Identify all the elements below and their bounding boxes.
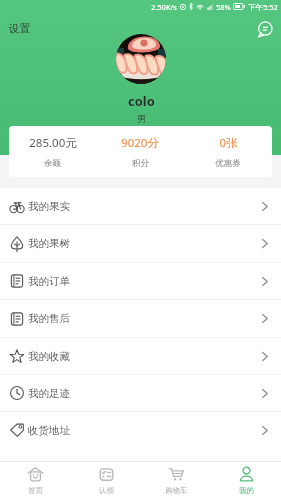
button[interactable]: 我的收藏 [0,338,281,374]
staticText: colo [128,92,155,110]
button[interactable]: 收货地址 [0,412,281,448]
staticText: 我的足迹 [28,387,70,400]
staticText: 积分 [132,158,149,169]
button[interactable]: 购物车 [141,462,211,500]
button[interactable]: 我的果树 [0,225,281,262]
staticText: 设置 [9,22,30,35]
button[interactable]: 285.00元 [9,135,96,169]
staticText: 我的果树 [28,237,70,250]
button[interactable]: 我的 [211,462,281,500]
button[interactable]: 0张 [184,135,272,169]
button[interactable]: 设置 [5,20,34,37]
staticText: 收货地址 [28,424,70,437]
staticText: 0张 [219,135,238,151]
staticText: 我的收藏 [28,350,70,363]
staticText: 下午5:52 [248,2,278,12]
staticText: 285.00元 [29,135,77,151]
button[interactable] [116,34,166,84]
button[interactable]: Messages [256,21,274,39]
staticText: 我的果实 [28,200,70,213]
button[interactable]: 认领 [71,462,141,500]
staticText: 2.50K/s [151,2,177,12]
staticText: 购物车 [165,486,188,495]
staticText: 我的售后 [28,312,70,325]
staticText: 9020分 [121,135,159,151]
button[interactable]: 我的订单 [0,263,281,299]
staticText: 我的订单 [28,275,70,288]
button[interactable]: 我的售后 [0,300,281,337]
staticText: 认领 [99,486,114,495]
staticText: 首页 [28,486,43,495]
button[interactable]: 我的果实 [0,188,281,224]
staticText: 男 [137,113,146,124]
button[interactable]: 首页 [0,462,71,500]
staticText: 余额 [44,158,61,169]
button[interactable]: 9020分 [96,135,184,169]
staticText: 优惠券 [215,158,241,169]
staticText: 58% [216,2,231,12]
staticText: 我的 [239,486,254,495]
button[interactable]: 我的足迹 [0,375,281,411]
